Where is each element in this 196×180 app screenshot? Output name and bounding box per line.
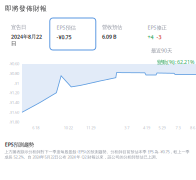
staticText: 上方圖表顯示分析師對下一季度每股盈餘 (EPS) 的預測趨勢。分析師目前預估本季… — [4, 149, 189, 160]
button[interactable]: EPS修正 — [141, 18, 187, 50]
staticText: -¥1.40 — [9, 100, 19, 105]
staticText: 營收預估 — [102, 24, 122, 31]
staticText: 變動(%): 62.21% — [157, 58, 194, 66]
staticText: 4 19 — [143, 125, 150, 130]
button[interactable]: 營收預估 — [95, 18, 141, 50]
staticText: 10 22 — [64, 125, 73, 130]
staticText: EPS預估 — [56, 24, 75, 31]
staticText: 8 6 — [190, 125, 195, 130]
staticText: -¥0.75 — [56, 34, 71, 41]
staticText: 宣告日 — [11, 24, 26, 31]
staticText: EPS預測趨勢 — [5, 141, 34, 148]
staticText: -¥0.80 — [9, 71, 19, 76]
staticText: -¥0.60 — [9, 61, 19, 66]
staticText: EPS修正 — [147, 24, 166, 31]
staticText: -¥1.80 — [9, 119, 19, 124]
staticText: 3 7 — [124, 125, 129, 130]
staticText: 7 3 — [175, 125, 180, 130]
staticText: 即將發佈財報 — [5, 4, 47, 13]
button[interactable]: 宣告日 — [4, 18, 50, 50]
button[interactable]: 最近90天 — [148, 47, 172, 54]
staticText: 6 18 — [32, 125, 39, 130]
staticText: 2024年8月22日 — [11, 33, 42, 47]
staticText: -¥1.60 — [9, 109, 19, 115]
staticText: -¥1.20 — [9, 90, 19, 95]
staticText: +4 — [147, 34, 153, 41]
staticText: 最近90天 — [151, 47, 172, 54]
button[interactable]: EPS預估 — [50, 18, 96, 50]
staticText: -¥1 — [14, 80, 19, 86]
staticText: -3 — [156, 34, 161, 41]
staticText: 5 29 — [158, 125, 165, 130]
staticText: 6.09 B — [102, 33, 117, 40]
staticText: 11 29 — [86, 125, 95, 130]
